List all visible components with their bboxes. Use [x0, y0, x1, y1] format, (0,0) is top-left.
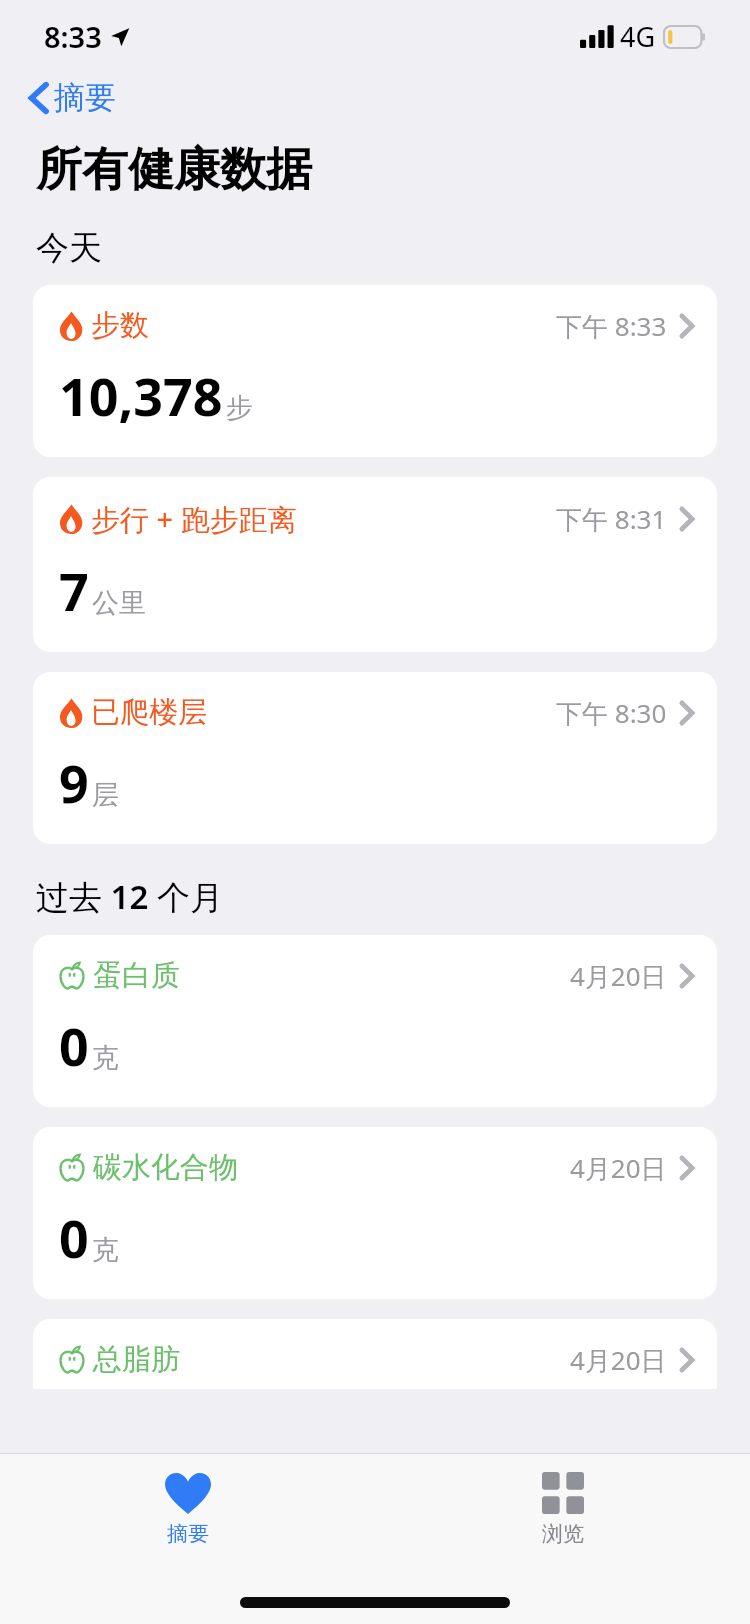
staticText: 总脂肪	[93, 1341, 180, 1378]
button[interactable]: 蛋白质	[33, 935, 717, 1107]
staticText: 摘要	[54, 78, 116, 117]
button[interactable]: 碳水化合物	[33, 1127, 717, 1299]
staticText: 0	[59, 1010, 89, 1081]
staticText: 蛋白质	[93, 957, 180, 994]
staticText: 4月20日	[570, 1342, 667, 1378]
staticText: 步数	[91, 307, 149, 344]
button[interactable]: 摘要	[135, 1468, 241, 1551]
staticText: 碳水化合物	[93, 1149, 238, 1186]
button[interactable]: 步数	[33, 285, 717, 457]
staticText: 已爬楼层	[91, 694, 207, 731]
staticText: 浏览	[542, 1521, 584, 1547]
staticText: 过去 12 个月	[36, 874, 223, 919]
other: 浏览	[542, 1472, 584, 1514]
staticText: 层	[92, 778, 119, 812]
staticText: 克	[92, 1233, 119, 1267]
staticText: 10,378	[59, 360, 223, 431]
staticText: 下午 8:31	[556, 501, 667, 537]
staticText: 4G	[620, 18, 656, 55]
staticText: 克	[92, 1041, 119, 1075]
button[interactable]: 步行 + 跑步距离	[33, 477, 717, 652]
button[interactable]: 摘要	[22, 72, 122, 123]
staticText: 7	[59, 555, 89, 626]
staticText: 步行 + 跑步距离	[91, 499, 297, 539]
button[interactable]: 已爬楼层	[33, 672, 717, 844]
staticText: 下午 8:30	[556, 695, 667, 731]
staticText: 摘要	[167, 1521, 209, 1547]
staticText: 所有健康数据	[36, 141, 312, 199]
staticText: 4月20日	[570, 958, 667, 994]
staticText: 8:33	[44, 17, 102, 56]
staticText: 4月20日	[570, 1150, 667, 1186]
staticText: 公里	[92, 586, 146, 620]
button[interactable]: 浏览	[512, 1468, 614, 1551]
button[interactable]: 总脂肪	[33, 1319, 717, 1389]
other: 摘要	[165, 1472, 211, 1514]
staticText: 步	[226, 391, 253, 425]
staticText: 下午 8:33	[556, 308, 667, 344]
staticText: 0	[59, 1202, 89, 1273]
staticText: 今天	[36, 227, 102, 269]
staticText: 9	[59, 747, 89, 818]
